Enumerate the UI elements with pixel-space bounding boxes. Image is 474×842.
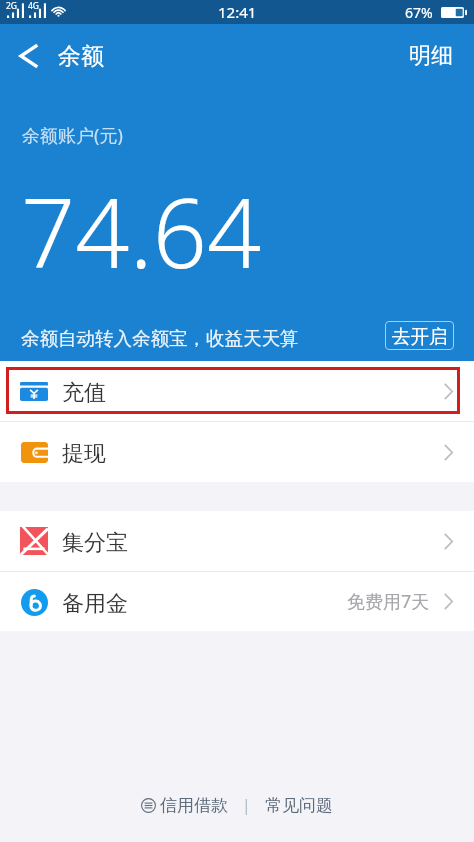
staticText: 备用金 — [62, 590, 128, 618]
staticText: 常见问题 — [265, 795, 333, 816]
button[interactable]: 明细 — [409, 28, 453, 84]
staticText: 余额 — [58, 42, 104, 71]
staticText: 余额账户(元) — [22, 123, 123, 148]
staticText: | — [242, 794, 251, 816]
staticText: 4G — [28, 0, 40, 12]
staticText: 明细 — [409, 42, 453, 70]
staticText: 74.64 — [21, 166, 262, 295]
staticText: 67% — [405, 3, 433, 22]
button[interactable]: 备用金 — [0, 572, 474, 631]
staticText: 信用借款 — [160, 795, 228, 816]
staticText: 2G — [6, 0, 18, 12]
staticText: 免费用7天 — [347, 589, 430, 614]
button[interactable]: 信用借款 — [141, 795, 228, 816]
button[interactable]: Back — [0, 28, 56, 84]
staticText: 去开启 — [392, 325, 448, 348]
button[interactable]: 提现 — [0, 422, 474, 482]
staticText: 集分宝 — [62, 529, 128, 557]
button[interactable]: 常见问题 — [265, 795, 333, 816]
staticText: 充值 — [62, 379, 106, 407]
staticText: 12:41 — [218, 2, 257, 22]
button[interactable]: 集分宝 — [0, 511, 474, 571]
staticText: 提现 — [62, 440, 106, 468]
button[interactable]: 去开启 — [385, 321, 454, 350]
button[interactable]: 充值 — [0, 361, 474, 421]
staticText: 余额自动转入余额宝，收益天天算 — [21, 327, 299, 350]
